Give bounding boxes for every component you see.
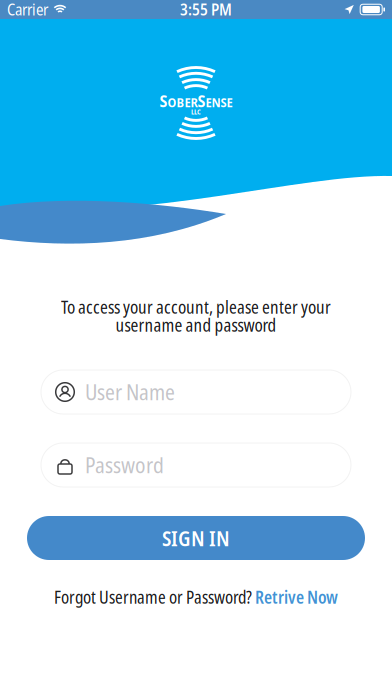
staticText: Forgot Username or Password? <box>54 585 255 609</box>
button[interactable]: SIGN IN <box>27 516 365 560</box>
staticText: S <box>197 90 205 112</box>
staticText: Retrive Now <box>255 585 338 609</box>
staticText: OBER <box>167 94 197 111</box>
staticText: 3:55 PM <box>180 0 232 20</box>
staticText: username and password <box>115 313 276 337</box>
button[interactable]: Retrive Now <box>255 585 338 609</box>
staticText: S <box>159 90 167 112</box>
staticText: ENSE <box>205 94 232 111</box>
button[interactable]: User Name <box>41 370 351 414</box>
staticText: User Name <box>85 377 175 407</box>
button[interactable]: Password <box>41 443 351 487</box>
staticText: To access your account, please enter you… <box>61 295 331 319</box>
staticText: Password <box>85 450 164 480</box>
staticText: Carrier <box>7 0 48 20</box>
staticText: LLC <box>191 107 201 117</box>
staticText: SIGN IN <box>162 523 230 553</box>
